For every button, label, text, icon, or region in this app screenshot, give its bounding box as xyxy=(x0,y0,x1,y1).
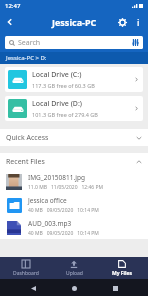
staticText: Jessica-PC xyxy=(52,16,97,28)
staticText: Search xyxy=(18,38,41,48)
staticText: 11.0 MB 11/05/2020 12:46 PM xyxy=(28,184,104,191)
button[interactable]: Upload xyxy=(52,257,96,279)
button[interactable]: Back xyxy=(25,280,41,296)
button[interactable]: Jessica-PC > D: xyxy=(0,52,148,64)
button[interactable]: IMG_20150811.jpg xyxy=(0,170,148,193)
staticText: Quick Access xyxy=(6,133,130,143)
button[interactable]: Recent Files xyxy=(0,153,148,170)
staticText: My Files xyxy=(112,270,133,277)
staticText: Dashboard xyxy=(13,270,39,277)
staticText: 40 MB 09/05/2020 10:14 PM xyxy=(28,207,99,214)
button[interactable]: Home xyxy=(66,280,82,296)
button[interactable]: Filter xyxy=(127,36,143,49)
button[interactable]: Recents xyxy=(107,280,123,296)
staticText: i xyxy=(137,16,140,28)
button[interactable]: Info xyxy=(131,15,145,29)
button[interactable]: Local Drive (D:) xyxy=(5,96,143,121)
staticText: Jessica office xyxy=(28,196,67,205)
button[interactable]: Search xyxy=(5,36,143,49)
staticText: IMG_20150811.jpg xyxy=(28,173,85,182)
button[interactable]: Back xyxy=(0,12,20,32)
staticText: Jessica-PC > D: xyxy=(6,54,47,62)
button[interactable]: Settings xyxy=(113,13,131,31)
staticText: Upload xyxy=(66,270,83,277)
staticText: Recent Files xyxy=(6,157,130,167)
button[interactable]: AUD_003.mp3 xyxy=(0,216,148,239)
staticText: AUD_003.mp3 xyxy=(28,219,72,228)
staticText: Local Drive (C:) xyxy=(32,70,82,80)
button[interactable]: Local Drive (C:) xyxy=(5,67,143,92)
staticText: 40 MB 09/05/2020 10:14 PM xyxy=(28,230,99,237)
button[interactable]: Dashboard xyxy=(4,257,48,279)
button[interactable]: Quick Access xyxy=(0,129,148,146)
button[interactable]: My Files xyxy=(100,257,144,279)
staticText: 117.3 GB free of 60.3 GB xyxy=(32,82,95,89)
staticText: 101.3 GB free of 279.4 GB xyxy=(32,111,98,118)
button[interactable]: Jessica office xyxy=(0,193,148,216)
staticText: Local Drive (D:) xyxy=(32,99,83,109)
staticText: 12:47 xyxy=(5,2,21,10)
